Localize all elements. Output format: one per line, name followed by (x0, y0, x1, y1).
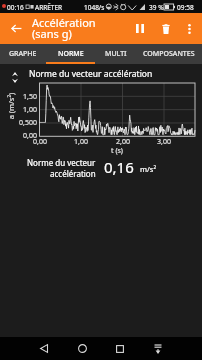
staticText: GRAPHE (9, 49, 37, 59)
staticText: 1,00 (66, 137, 96, 147)
button[interactable]: NORME (46, 44, 95, 64)
button[interactable]: Hide keyboard (147, 337, 169, 360)
staticText: 1,50 (8, 92, 37, 102)
staticText: 3,00 (149, 137, 179, 147)
staticText: t (s) (90, 146, 144, 156)
staticText: COMPOSANTES (143, 49, 195, 59)
button[interactable]: Home (71, 337, 93, 360)
button[interactable]: Pause (129, 13, 151, 44)
staticText: Norme du vecteur (27, 157, 96, 168)
button[interactable]: Back (33, 337, 55, 360)
staticText: 0,00 (8, 131, 37, 141)
button[interactable]: Delete (155, 13, 177, 44)
staticText: 1048/s (84, 3, 105, 12)
staticText: 09:58 (177, 3, 194, 12)
staticText: MULTI (105, 49, 127, 59)
staticText: 0,500 (8, 118, 37, 128)
staticText: ARRÊTER (35, 3, 63, 12)
button[interactable]: Back (6, 13, 27, 44)
staticText: 39 % (149, 3, 164, 12)
staticText: 0,00 (25, 137, 55, 147)
button[interactable]: Expand graph (8, 70, 21, 84)
button[interactable]: MULTI (95, 44, 136, 64)
button[interactable]: Recent apps (109, 337, 131, 360)
staticText: 1,00 (8, 105, 37, 115)
staticText: NORME (58, 49, 84, 59)
staticText: 0,16 (104, 157, 134, 177)
staticText: accélération (50, 168, 96, 179)
staticText: a (m/s²) (6, 89, 16, 123)
staticText: Norme du vecteur accélération (29, 68, 153, 80)
button[interactable]: COMPOSANTES (136, 44, 202, 64)
staticText: Accélération (sans g) (32, 15, 96, 41)
button[interactable]: More options (178, 13, 200, 44)
staticText: 2,00 (108, 137, 138, 147)
button[interactable]: GRAPHE (0, 44, 46, 64)
staticText: 00:16 (7, 3, 24, 12)
staticText: m/s² (140, 164, 157, 174)
